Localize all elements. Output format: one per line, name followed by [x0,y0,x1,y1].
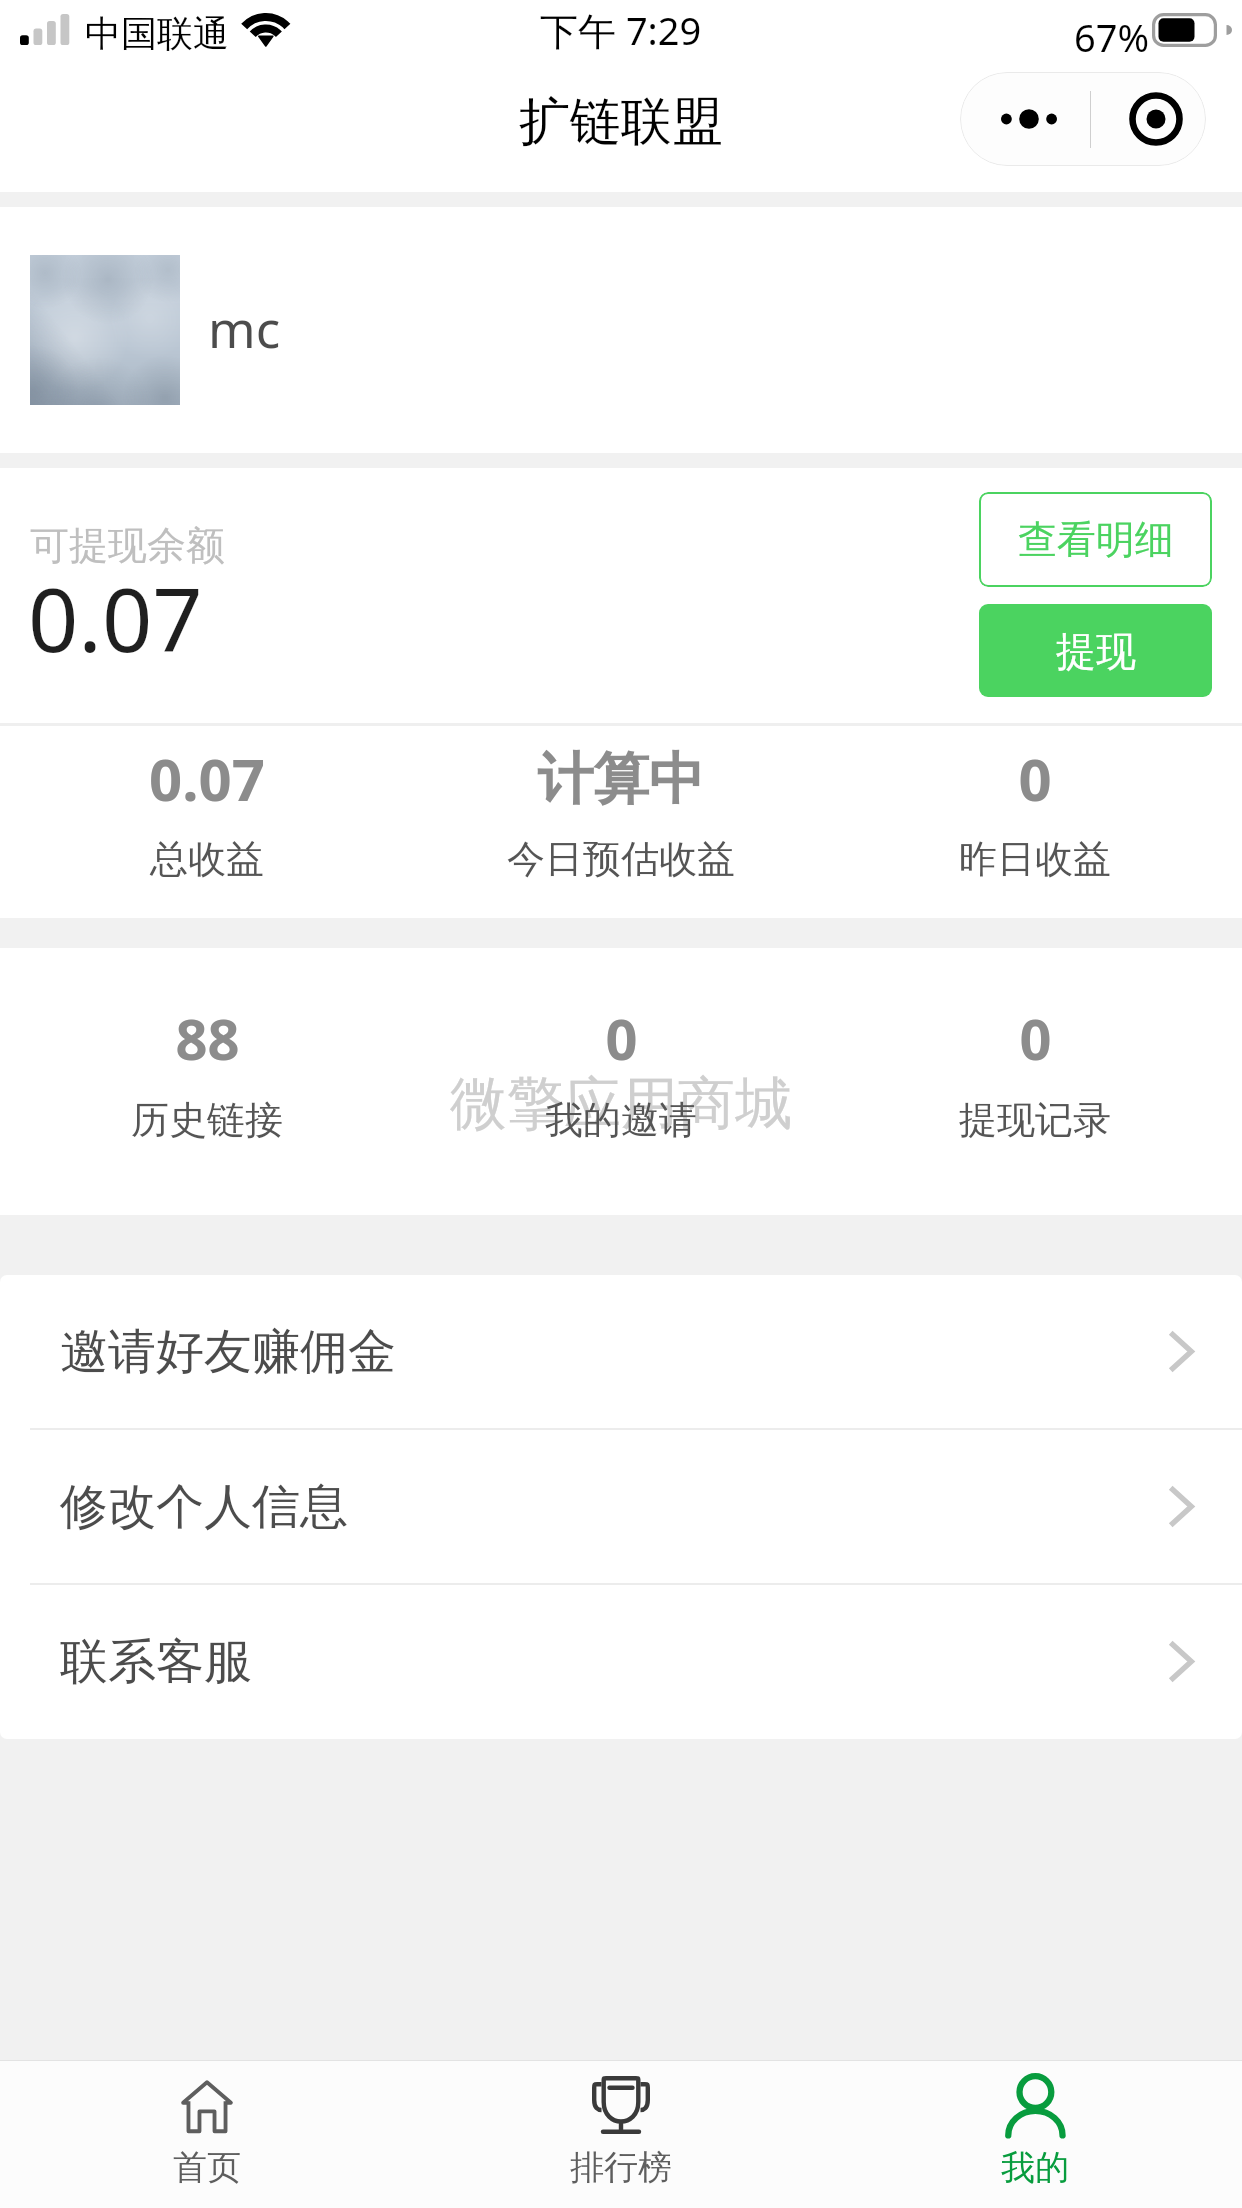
staticText: 提现记录 [959,1096,1111,1144]
staticText: 微擎应用商城 [450,1068,792,1140]
staticText: 我的 [1001,2146,1069,2189]
button[interactable]: 更多 [960,72,1090,166]
staticText: 邀请好友赚佣金 [60,1322,396,1382]
staticText: 88 [175,1000,240,1076]
button[interactable]: 联系客服 [0,1585,1242,1738]
staticText: 计算中 [537,744,705,814]
staticText: 首页 [173,2146,241,2189]
staticText: 排行榜 [570,2146,672,2189]
staticText: 中国联通 [85,11,229,56]
staticText: 0 [1019,1000,1052,1076]
button[interactable]: 修改个人信息 [0,1430,1242,1583]
staticText: 0 [605,1000,638,1076]
button[interactable]: mc [0,207,1242,453]
button[interactable]: 0.07 [0,726,414,918]
staticText: 提现 [1056,626,1136,676]
button[interactable]: 提现 [979,604,1212,697]
staticText: mc [208,293,281,362]
button[interactable]: 邀请好友赚佣金 [0,1275,1242,1428]
staticText: 我的邀请 [545,1096,697,1144]
button[interactable]: 88 [0,948,414,1215]
button[interactable]: 计算中 [414,726,828,918]
staticText: 0.07 [28,558,203,678]
button[interactable]: 关闭小程序 [1091,72,1206,166]
staticText: 历史链接 [131,1096,283,1144]
staticText: 0 [1018,739,1052,818]
staticText: 联系客服 [60,1632,252,1692]
button[interactable]: 0 [828,726,1242,918]
button[interactable]: 首页 [0,2061,414,2208]
staticText: 67% [1074,11,1150,63]
staticText: 修改个人信息 [60,1477,348,1537]
staticText: 0.07 [149,739,265,818]
staticText: 下午 7:29 [540,4,702,56]
staticText: 可提现余额 [30,521,225,570]
staticText: 今日预估收益 [507,835,735,883]
button[interactable]: 查看明细 [979,492,1212,587]
button[interactable]: 0 [414,948,828,1215]
staticText: 扩链联盟 [519,90,723,154]
staticText: 查看明细 [1018,515,1174,564]
staticText: 昨日收益 [959,835,1111,883]
button[interactable]: 排行榜 [414,2061,828,2208]
staticText: 总收益 [150,835,264,883]
button[interactable]: 我的 [828,2061,1242,2208]
button[interactable]: 0 [828,948,1242,1215]
